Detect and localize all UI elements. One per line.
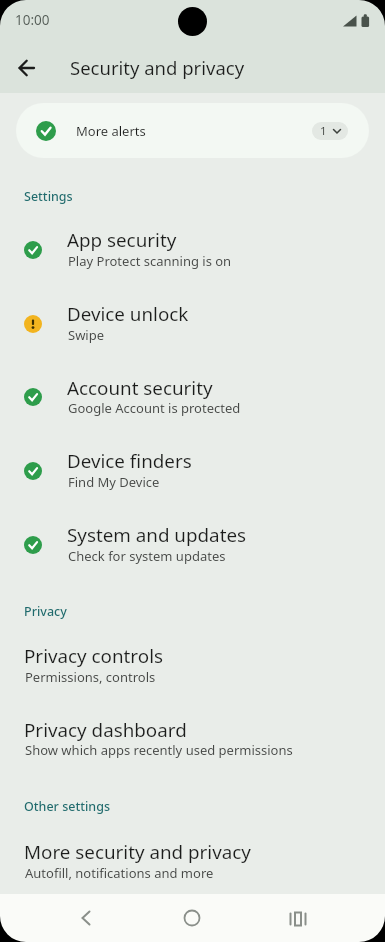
staticText: Settings bbox=[24, 188, 73, 205]
staticText: Privacy bbox=[24, 603, 67, 620]
staticText: Find My Device bbox=[68, 473, 160, 491]
button[interactable]: Privacy dashboard bbox=[0, 705, 385, 773]
button[interactable] bbox=[4, 46, 48, 90]
staticText: Check for system updates bbox=[68, 547, 226, 565]
staticText: System and updates bbox=[67, 522, 247, 548]
staticText: Device finders bbox=[67, 448, 192, 474]
button[interactable]: Privacy controls bbox=[0, 632, 385, 700]
staticText: Show which apps recently used permission… bbox=[25, 741, 293, 759]
staticText: Security and privacy bbox=[70, 55, 245, 80]
staticText: More security and privacy bbox=[24, 839, 251, 865]
button[interactable]: Device unlock bbox=[0, 289, 385, 357]
button[interactable]: App security bbox=[0, 216, 385, 284]
button[interactable] bbox=[168, 894, 216, 942]
button[interactable] bbox=[62, 894, 110, 942]
staticText: Other settings bbox=[24, 798, 111, 815]
staticText: Device unlock bbox=[67, 301, 189, 327]
staticText: Google Account is protected bbox=[68, 399, 241, 417]
staticText: Swipe bbox=[68, 326, 105, 344]
button[interactable]: Account security bbox=[0, 363, 385, 431]
button[interactable]: More security and privacy bbox=[0, 828, 385, 896]
staticText: App security bbox=[67, 227, 177, 253]
staticText: More alerts bbox=[76, 122, 146, 140]
staticText: Play Protect scanning is on bbox=[68, 252, 232, 270]
button[interactable]: 1 bbox=[312, 122, 348, 140]
staticText: Permissions, controls bbox=[25, 668, 156, 686]
staticText: Privacy controls bbox=[24, 643, 163, 669]
button[interactable]: Device finders bbox=[0, 436, 385, 504]
staticText: Privacy dashboard bbox=[24, 717, 187, 743]
staticText: 10:00 bbox=[15, 11, 50, 29]
button[interactable]: More alerts bbox=[16, 103, 369, 158]
button[interactable]: System and updates bbox=[0, 510, 385, 578]
staticText: Account security bbox=[67, 375, 213, 401]
button[interactable] bbox=[274, 894, 322, 942]
staticText: Autofill, notifications and more bbox=[25, 864, 214, 882]
staticText: 1 bbox=[320, 123, 327, 139]
